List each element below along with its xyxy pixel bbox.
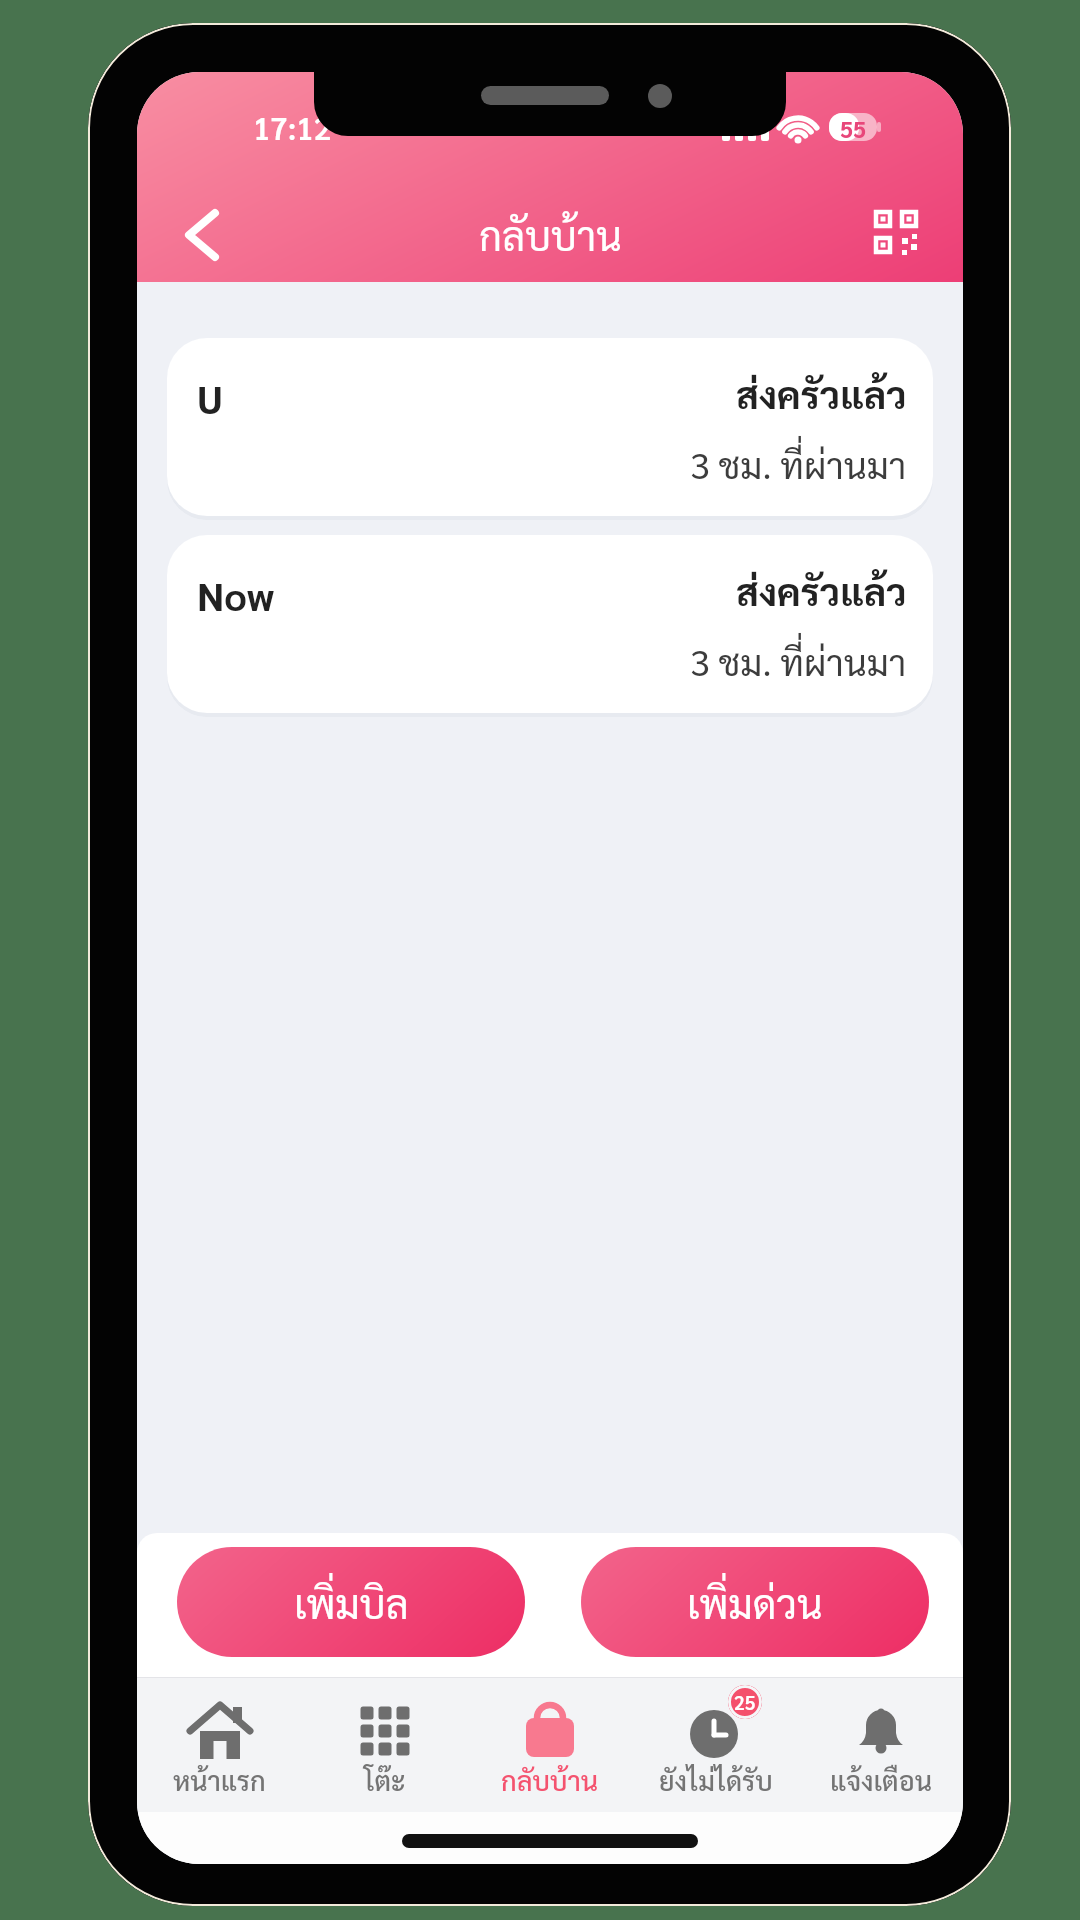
staticText: กลับบ้าน [479, 208, 622, 260]
button[interactable]: หน้าแรก [137, 1687, 302, 1805]
staticText: U [197, 372, 223, 423]
button[interactable]: U [167, 338, 933, 516]
staticText: 3 ชม. ที่ผ่านมา [690, 638, 907, 685]
staticText: หน้าแรก [173, 1762, 266, 1797]
staticText: โต๊ะ [364, 1762, 406, 1797]
staticText: เพิ่มบิล [294, 1576, 409, 1628]
button[interactable]: ยังไม่ได้รับ [633, 1687, 798, 1805]
button[interactable]: แจ้งเตือน [798, 1687, 963, 1805]
staticText: 3 ชม. ที่ผ่านมา [690, 441, 907, 488]
staticText: 55 [840, 113, 866, 141]
button[interactable]: โต๊ะ [302, 1687, 467, 1805]
staticText: แจ้งเตือน [830, 1762, 932, 1797]
button[interactable]: กลับบ้าน [467, 1687, 632, 1805]
button[interactable] [859, 194, 933, 268]
button[interactable]: เพิ่มบิล [177, 1547, 525, 1657]
staticText: ส่งครัวแล้ว [736, 368, 907, 417]
staticText: กลับบ้าน [501, 1762, 599, 1797]
staticText: ส่งครัวแล้ว [736, 565, 907, 614]
staticText: 25 [734, 1690, 756, 1715]
button[interactable]: เพิ่มด่วน [581, 1547, 929, 1657]
staticText: ยังไม่ได้รับ [659, 1762, 773, 1797]
staticText: Now [197, 569, 275, 620]
button[interactable]: Now [167, 535, 933, 713]
staticText: 17:12 [253, 107, 332, 147]
staticText: เพิ่มด่วน [687, 1576, 823, 1628]
button[interactable] [167, 198, 237, 272]
